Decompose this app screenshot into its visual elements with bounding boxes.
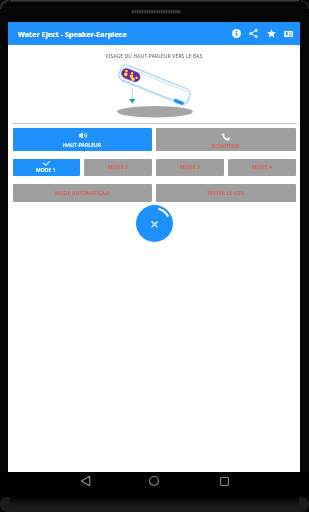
button[interactable]: MODE AUTOMATIQUE xyxy=(13,184,152,202)
staticText: MODE 4 xyxy=(252,164,273,171)
staticText: VISAGE DU HAUT-PARLEUR VERS LE BAS xyxy=(8,53,300,60)
staticText: TESTER LE SON xyxy=(207,190,245,197)
staticText: MODE 3 xyxy=(180,164,201,171)
button[interactable]: HAUT-PARLEUR xyxy=(13,128,152,151)
staticText: MODE 1 xyxy=(36,167,57,174)
button[interactable]: ÉCOUTEUR xyxy=(156,128,296,151)
button[interactable]: Share xyxy=(245,26,262,41)
staticText: ÉCOUTEUR xyxy=(212,143,240,150)
button[interactable]: MODE 1 xyxy=(13,159,80,176)
button[interactable]: Information xyxy=(228,26,245,41)
staticText: HAUT-PARLEUR xyxy=(63,142,102,149)
button[interactable]: Back xyxy=(73,472,97,490)
button[interactable]: MODE 3 xyxy=(156,159,224,176)
staticText: Water Eject - Speaker-Earpiece xyxy=(18,29,127,39)
button[interactable]: TESTER LE SON xyxy=(156,184,296,202)
button[interactable]: MODE 4 xyxy=(228,159,296,176)
staticText: MODE 2 xyxy=(108,164,129,171)
staticText: MODE AUTOMATIQUE xyxy=(55,190,110,197)
button[interactable]: Rate this app xyxy=(263,26,280,41)
button[interactable]: MODE 2 xyxy=(84,159,152,176)
button[interactable]: Contact xyxy=(280,26,297,41)
button[interactable]: Recent apps xyxy=(212,472,236,490)
button[interactable]: Home xyxy=(142,472,166,490)
button[interactable]: Stop xyxy=(136,205,173,242)
